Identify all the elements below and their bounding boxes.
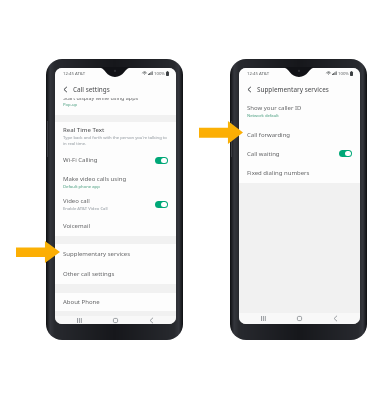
button[interactable]: Recent apps <box>62 316 97 324</box>
staticText: Default phone app <box>63 184 100 190</box>
button[interactable]: Voicemail <box>55 216 176 236</box>
staticText: Pop-up <box>63 102 78 108</box>
staticText: Call forwarding <box>247 131 291 139</box>
staticText: Wi-Fi Calling <box>63 156 98 164</box>
staticText: Voicemail <box>63 222 90 230</box>
button[interactable]: Call waiting switch <box>339 150 352 157</box>
staticText: Other call settings <box>63 270 115 278</box>
button[interactable]: About Phone <box>55 293 176 311</box>
staticText: Show your caller ID <box>247 104 302 112</box>
button[interactable]: Wi-Fi Calling <box>55 149 176 171</box>
staticText: Make video calls using <box>63 175 127 183</box>
staticText: Supplementary services <box>257 85 329 94</box>
button[interactable]: Make video calls using <box>55 171 176 193</box>
button[interactable]: Show your caller ID <box>239 98 360 125</box>
button[interactable]: Video call <box>55 193 176 216</box>
button[interactable]: Navigate back <box>61 85 70 94</box>
staticText: Network default <box>247 113 279 119</box>
button[interactable]: Fixed dialing numbers <box>239 163 360 183</box>
button[interactable]: Wi-Fi Calling switch <box>155 157 168 164</box>
button[interactable]: Navigate back <box>245 85 254 94</box>
button[interactable]: Back <box>133 316 169 324</box>
button[interactable]: Start display while using apps <box>55 98 176 115</box>
staticText: Type back and forth with the person you'… <box>63 135 168 146</box>
staticText: Real Time Text <box>63 126 105 134</box>
staticText: 12:45 AT&T <box>247 70 270 76</box>
button[interactable]: Call waiting <box>239 144 360 163</box>
staticText: About Phone <box>63 298 100 306</box>
staticText: 100% <box>338 70 349 76</box>
staticText: Fixed dialing numbers <box>247 169 310 177</box>
button[interactable]: Real Time Text <box>55 122 176 149</box>
button[interactable]: Back <box>317 313 353 324</box>
staticText: Call waiting <box>247 150 280 158</box>
button[interactable]: Other call settings <box>55 264 176 284</box>
staticText: Call settings <box>73 85 110 94</box>
staticText: Start display while using apps <box>63 98 139 101</box>
staticText: Supplementary services <box>63 250 131 258</box>
staticText: Enable AT&T Video Call <box>63 206 108 212</box>
button[interactable]: Home <box>97 316 133 324</box>
button[interactable]: Recent apps <box>246 313 281 324</box>
button[interactable]: Home <box>281 313 317 324</box>
staticText: 12:45 AT&T <box>63 70 86 76</box>
staticText: Video call <box>63 197 90 205</box>
button[interactable]: Call forwarding <box>239 125 360 144</box>
staticText: 100% <box>154 70 165 76</box>
button[interactable]: Video call switch <box>155 201 168 208</box>
button[interactable]: Supplementary services <box>55 244 176 264</box>
